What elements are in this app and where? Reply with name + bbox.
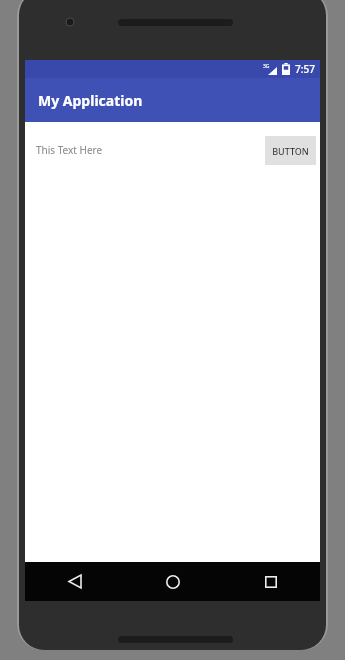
button[interactable]: Home (124, 562, 222, 601)
button[interactable]: BUTTON (265, 136, 316, 165)
staticText: 3G (263, 63, 270, 70)
button[interactable]: Back (25, 562, 124, 601)
staticText: BUTTON (272, 145, 309, 157)
staticText: My Application (38, 91, 143, 110)
staticText: 7:57 (295, 62, 315, 76)
button[interactable]: Recent apps (222, 562, 320, 601)
staticText: This Text Here (36, 143, 103, 157)
